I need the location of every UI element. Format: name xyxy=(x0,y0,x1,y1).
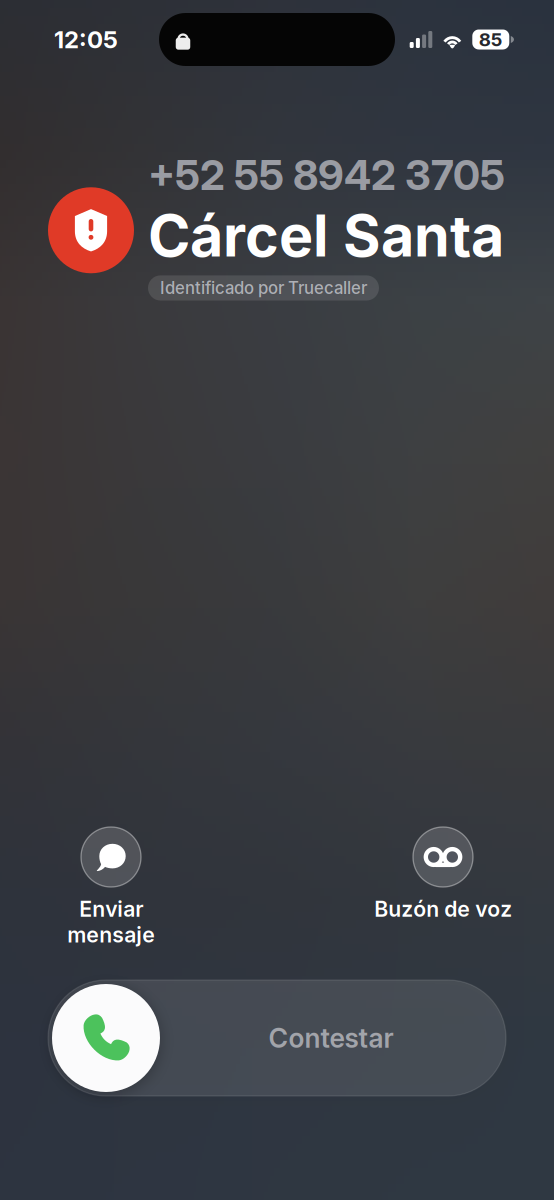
staticText: Cárcel Santa xyxy=(148,201,504,270)
button[interactable]: Enviar mensaje xyxy=(21,827,201,948)
staticText: 85 xyxy=(479,28,503,51)
staticText: Identificado por Truecaller xyxy=(160,278,367,298)
staticText: Enviar mensaje xyxy=(67,896,155,948)
staticText: Buzón de voz xyxy=(374,896,512,922)
staticText: 12:05 xyxy=(54,25,118,54)
button[interactable]: Contestar xyxy=(48,980,506,1096)
staticText: Contestar xyxy=(268,1022,393,1054)
button[interactable]: Buzón de voz xyxy=(353,827,533,922)
staticText: +52 55 8942 3705 xyxy=(148,150,505,200)
